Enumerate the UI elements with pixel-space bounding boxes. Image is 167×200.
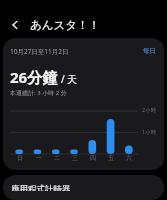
staticText: 10月27日至11月2日: [10, 47, 69, 56]
button[interactable]: 應用程式計時器: [3, 175, 164, 200]
staticText: 三: [72, 154, 78, 162]
staticText: 26分鐘: [10, 67, 58, 87]
staticText: 六: [126, 154, 132, 162]
staticText: 應用程式計時器: [11, 184, 71, 191]
button[interactable]: 每日: [141, 46, 158, 56]
staticText: / 天: [61, 72, 78, 86]
staticText: 2小時: [142, 106, 157, 114]
staticText: 五: [108, 154, 114, 162]
staticText: 二: [54, 154, 60, 162]
button[interactable]: Back: [4, 14, 26, 36]
staticText: 本週總計: 3 小時 2 分: [10, 89, 67, 97]
staticText: 1小時: [142, 128, 157, 136]
staticText: あんスタ！！: [30, 18, 101, 32]
staticText: 日: [17, 154, 23, 162]
staticText: 四: [90, 154, 96, 162]
staticText: 一: [36, 154, 42, 162]
staticText: 每日: [143, 47, 156, 55]
